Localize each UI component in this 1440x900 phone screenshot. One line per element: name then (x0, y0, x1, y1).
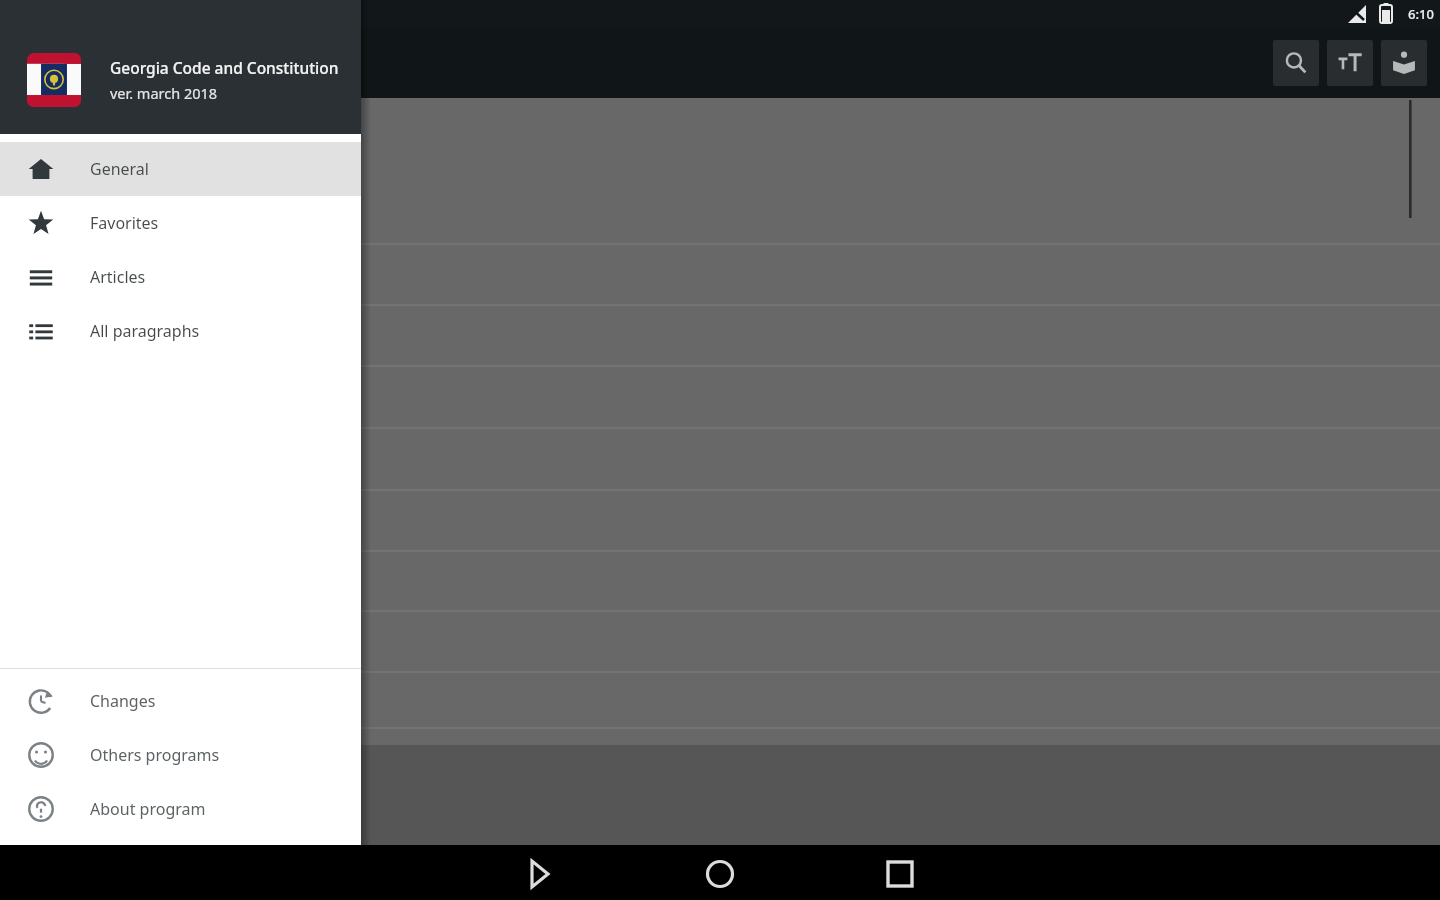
button[interactable]: Others programs (0, 728, 361, 782)
staticText: General (90, 158, 149, 180)
button[interactable]: Favorites (0, 196, 361, 250)
staticText: Georgia Code and Constitution (110, 57, 339, 78)
staticText: 6:10 (1408, 5, 1434, 23)
button[interactable]: Changes (0, 674, 361, 728)
staticText: All paragraphs (90, 320, 200, 342)
button[interactable]: All paragraphs (0, 304, 361, 358)
staticText: Others programs (90, 744, 220, 766)
staticText: Favorites (90, 212, 159, 234)
staticText: Changes (90, 690, 156, 712)
button[interactable]: Reading mode (1381, 40, 1427, 86)
button[interactable]: Search (1273, 40, 1319, 86)
staticText: About program (90, 798, 206, 820)
button[interactable]: Text size (1327, 40, 1373, 86)
button[interactable]: Articles (0, 250, 361, 304)
button[interactable]: Georgia Code and Constitution (0, 0, 361, 134)
staticText: ver. march 2018 (110, 83, 218, 103)
button[interactable]: General (0, 142, 361, 196)
staticText: Articles (90, 266, 146, 288)
button[interactable]: About program (0, 782, 361, 836)
